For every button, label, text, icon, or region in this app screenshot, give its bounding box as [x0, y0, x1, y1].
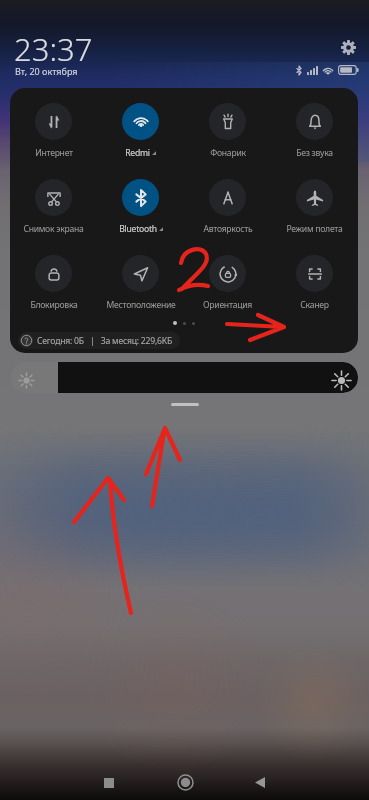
staticText: Интернет	[35, 147, 73, 159]
button[interactable]: Интернет	[10, 88, 97, 164]
staticText: Redmi	[125, 147, 150, 159]
button[interactable]: Recents	[88, 764, 130, 800]
staticText: Сегодня: 0Б | За месяц: 229,6КБ	[37, 335, 173, 347]
staticText: Ориентация	[203, 299, 252, 311]
button[interactable]: Redmi	[97, 88, 184, 164]
button[interactable]: Settings	[341, 40, 356, 55]
button[interactable]: Автояркость	[184, 164, 271, 240]
button[interactable]: Сканер	[271, 240, 358, 316]
button[interactable]: Режим полета	[271, 164, 358, 240]
staticText: Без звука	[296, 147, 333, 159]
staticText: Местоположение	[106, 299, 176, 311]
button[interactable]: Сегодня: 0Б | За месяц: 229,6КБ	[18, 332, 180, 349]
staticText: Bluetooth	[119, 223, 157, 235]
staticText: Режим полета	[286, 223, 343, 235]
staticText: Фонарик	[210, 147, 246, 159]
button[interactable]: Фонарик	[184, 88, 271, 164]
button[interactable]: Снимок экрана	[10, 164, 97, 240]
button[interactable]: Bluetooth	[97, 164, 184, 240]
staticText: Блокировка	[30, 299, 78, 311]
button[interactable]: Ориентация	[184, 240, 271, 316]
staticText: Вт, 20 октября	[15, 65, 78, 77]
button[interactable]: Back	[239, 763, 281, 800]
staticText: Автояркость	[203, 223, 253, 235]
staticText: 23:37	[14, 28, 93, 70]
button[interactable]: Brightness	[11, 362, 358, 393]
staticText: Снимок экрана	[23, 223, 84, 235]
button[interactable]: Без звука	[271, 88, 358, 164]
button[interactable]: Home	[164, 763, 206, 800]
staticText: Сканер	[300, 299, 329, 311]
button[interactable]: Блокировка	[10, 240, 97, 316]
button[interactable]: Местоположение	[97, 240, 184, 316]
